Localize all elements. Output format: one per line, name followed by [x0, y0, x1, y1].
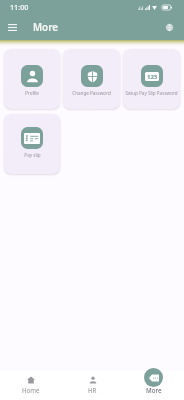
- staticText: HR: [88, 386, 97, 394]
- button[interactable]: Open navigation menu: [4, 19, 21, 36]
- button[interactable]: 123: [123, 49, 180, 109]
- button[interactable]: Pay slip: [4, 114, 60, 174]
- button[interactable]: Home: [0, 371, 62, 400]
- staticText: More: [146, 386, 162, 394]
- staticText: Pay slip: [24, 152, 41, 158]
- staticText: 123: [147, 73, 158, 81]
- staticText: Home: [22, 386, 40, 394]
- button[interactable]: Change Password: [63, 49, 120, 109]
- button[interactable]: More: [123, 371, 184, 400]
- staticText: 11:00: [10, 2, 29, 12]
- staticText: Setup Pay Slip Password: [125, 90, 178, 96]
- button[interactable]: Change language: [161, 19, 178, 36]
- button[interactable]: HR: [62, 371, 123, 400]
- staticText: Change Password: [72, 90, 111, 96]
- button[interactable]: Profile: [4, 49, 60, 109]
- staticText: Profile: [25, 90, 39, 96]
- staticText: More: [33, 21, 58, 34]
